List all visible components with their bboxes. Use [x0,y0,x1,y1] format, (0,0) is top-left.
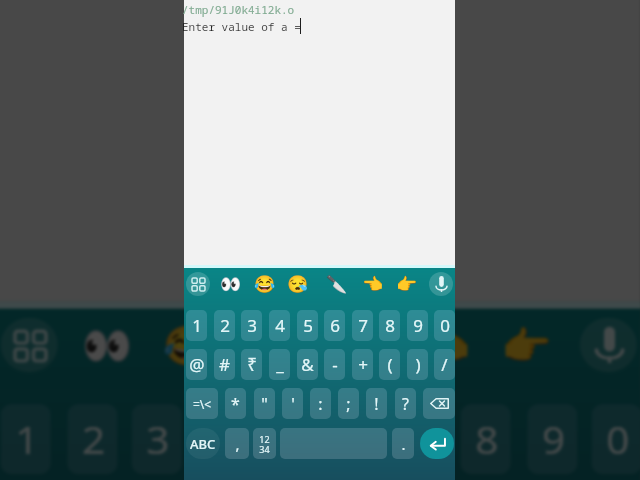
staticText: 🔪 [334,322,387,368]
button[interactable]: 3 [241,310,262,341]
button[interactable]: =\< [186,388,218,419]
button[interactable]: _ [269,349,290,380]
button[interactable]: 6 [329,404,379,474]
staticText: # [219,353,230,376]
staticText: 8 [475,413,499,465]
button[interactable]: 8 [461,404,511,474]
button[interactable]: * [225,388,246,419]
button[interactable]: / [434,349,455,380]
staticText: 4 [275,314,285,337]
button[interactable]: 5 [297,310,318,341]
button[interactable]: 8 [379,310,400,341]
staticText: 👉 [501,322,553,368]
button[interactable]: ' [282,388,303,419]
button[interactable]: 👈 [359,270,387,298]
staticText: * [231,393,240,415]
staticText: 9 [542,413,565,465]
staticText: _ [276,353,284,376]
staticText: 👈 [362,274,384,294]
staticText: 0 [440,314,450,337]
button[interactable]: 😪 [234,313,301,377]
button[interactable]: " [254,388,275,419]
button[interactable]: 4 [269,310,290,341]
button[interactable]: 👀 [217,270,245,298]
button[interactable]: 2 [67,404,117,474]
staticText: 5 [303,314,313,337]
button[interactable]: 2 [214,310,235,341]
staticText: 🔪 [326,274,348,294]
button[interactable]: & [297,349,318,380]
staticText: 6 [344,413,368,465]
staticText: ( [387,353,393,376]
button[interactable]: Voice input [580,318,637,372]
button[interactable]: ? [395,388,416,419]
button[interactable]: Backspace [423,388,455,419]
button[interactable]: Voice input [429,272,453,296]
button[interactable]: - [324,349,345,380]
staticText: 👀 [220,274,242,294]
button[interactable]: 9 [527,404,577,474]
staticText: 8 [385,314,395,337]
button[interactable]: ABC [186,428,220,459]
button[interactable]: 0 [592,404,640,474]
staticText: 👉 [396,274,418,294]
staticText: ; [346,393,351,415]
staticText: 3 [247,314,257,337]
staticText: 5 [279,413,303,465]
button[interactable]: 😂 [251,270,279,298]
staticText: ₹ [247,353,257,376]
button[interactable]: . [392,428,414,459]
button[interactable]: Emoji categories [1,318,58,372]
button[interactable]: 9 [407,310,428,341]
button[interactable]: 😪 [284,270,312,298]
button[interactable]: 👀 [75,313,141,377]
staticText: 6 [330,314,340,337]
staticText: 0 [606,413,630,465]
button[interactable]: 🔪 [323,270,351,298]
button[interactable]: ( [379,349,400,380]
button[interactable]: 0 [434,310,455,341]
button[interactable]: ; [338,388,359,419]
staticText: & [301,353,314,376]
button[interactable]: 4 [198,404,248,474]
button[interactable]: 😂 [156,313,222,377]
button[interactable]: @ [186,349,207,380]
button[interactable]: ) [407,349,428,380]
staticText: . [401,434,406,454]
staticText: ? [402,393,409,415]
button[interactable]: ₹ [241,349,262,380]
button[interactable]: , [225,428,249,459]
button[interactable]: 1 [1,404,51,474]
staticText: - [332,353,338,376]
staticText: ' [291,393,295,415]
button[interactable]: Numbers [253,428,276,459]
staticText: @ [189,353,205,376]
staticText: ! [374,393,379,415]
button[interactable]: 7 [352,310,373,341]
staticText: 4 [213,413,237,465]
staticText: 😂 [254,274,276,294]
button[interactable]: # [214,349,235,380]
staticText: 9 [413,314,423,337]
staticText: " [261,393,268,415]
button[interactable]: 👉 [494,313,561,377]
button[interactable]: Enter [420,428,454,459]
button[interactable]: + [352,349,373,380]
button[interactable]: 🔪 [327,313,394,377]
button[interactable]: : [310,388,331,419]
button[interactable]: 👈 [413,313,480,377]
staticText: 😪 [287,274,309,294]
staticText: 2 [220,314,230,337]
button[interactable]: ! [366,388,387,419]
staticText: / [441,353,448,376]
button[interactable]: 5 [265,404,315,474]
button[interactable]: 1 [186,310,207,341]
button[interactable]: 6 [324,310,345,341]
button[interactable]: Emoji categories [186,272,210,296]
button[interactable]: 👉 [393,270,421,298]
staticText: ) [415,353,421,376]
button[interactable]: 7 [396,404,446,474]
staticText: 👀 [82,322,134,368]
button[interactable]: 3 [132,404,182,474]
